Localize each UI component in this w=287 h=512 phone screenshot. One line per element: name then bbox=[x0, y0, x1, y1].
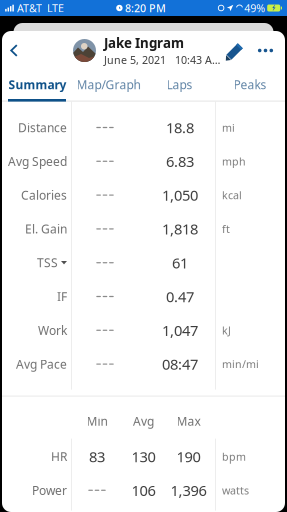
staticText: Distance bbox=[18, 119, 67, 135]
button[interactable]: Summary bbox=[2, 70, 73, 99]
staticText: 1,047 bbox=[162, 321, 198, 340]
staticText: 83 bbox=[89, 447, 105, 466]
staticText: Jake Ingram bbox=[104, 34, 184, 52]
staticText: 190 bbox=[176, 447, 200, 466]
staticText: Max bbox=[176, 413, 200, 429]
staticText: Power bbox=[32, 482, 67, 498]
staticText: 1,396 bbox=[170, 481, 206, 500]
staticText: AT&T bbox=[17, 1, 42, 15]
button[interactable]: Back bbox=[3, 31, 25, 70]
staticText: watts bbox=[222, 483, 249, 497]
staticText: Laps bbox=[166, 76, 192, 92]
staticText: 1,818 bbox=[162, 219, 198, 239]
staticText: kcal bbox=[222, 188, 242, 202]
staticText: Work bbox=[38, 322, 67, 338]
staticText: 49% bbox=[244, 1, 265, 15]
staticText: Min bbox=[86, 413, 107, 429]
staticText: 18.8 bbox=[166, 118, 194, 137]
staticText: 6.83 bbox=[166, 152, 194, 171]
staticText: mi bbox=[222, 120, 235, 135]
staticText: Avg Speed bbox=[8, 153, 67, 169]
staticText: bpm bbox=[222, 449, 246, 464]
staticText: IF bbox=[57, 288, 67, 304]
staticText: 08:47 bbox=[162, 354, 198, 374]
button[interactable]: Peaks bbox=[215, 70, 285, 99]
staticText: min/mi bbox=[222, 357, 259, 371]
staticText: 106 bbox=[131, 481, 155, 500]
staticText: TSS bbox=[37, 255, 58, 271]
button[interactable]: Edit bbox=[220, 31, 246, 70]
staticText: mph bbox=[222, 154, 246, 168]
staticText: Summary bbox=[8, 76, 66, 92]
staticText: ft bbox=[222, 222, 230, 236]
staticText: Calories bbox=[21, 187, 67, 203]
button[interactable]: Laps bbox=[144, 70, 215, 99]
staticText: Map/Graph bbox=[76, 76, 140, 92]
staticText: HR bbox=[51, 448, 67, 464]
staticText: El. Gain bbox=[25, 221, 67, 237]
button[interactable]: More options bbox=[252, 31, 279, 70]
button[interactable]: Map/Graph bbox=[73, 70, 144, 99]
staticText: 130 bbox=[131, 447, 155, 466]
staticText: Avg bbox=[133, 413, 154, 429]
staticText: Avg Pace bbox=[16, 356, 67, 372]
staticText: 61 bbox=[172, 253, 188, 272]
staticText: kJ bbox=[222, 323, 231, 337]
staticText: Peaks bbox=[233, 76, 266, 92]
staticText: 8:20 PM bbox=[125, 1, 166, 15]
staticText: LTE bbox=[47, 1, 64, 15]
staticText: 1,050 bbox=[162, 185, 198, 205]
staticText: 0.47 bbox=[166, 287, 194, 306]
staticText: June 5, 2021 10:43 AM bbox=[104, 53, 220, 67]
